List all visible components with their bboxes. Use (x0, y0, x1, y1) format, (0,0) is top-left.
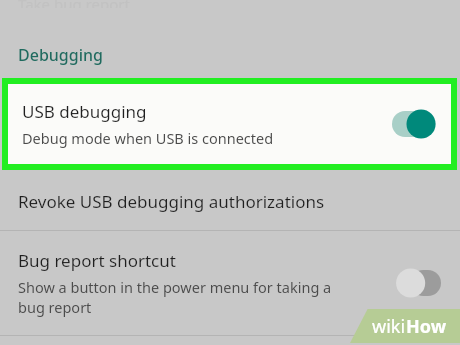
staticText: Debugging (18, 44, 103, 66)
staticText: wiki (372, 314, 406, 339)
button[interactable]: Bug report shortcut (0, 231, 460, 335)
staticText: Show a button in the power menu for taki… (18, 277, 332, 317)
button[interactable]: USB debugging (8, 84, 451, 164)
button[interactable]: Bug report shortcut toggle, off (396, 268, 442, 298)
staticText: Debug mode when USB is connected (22, 128, 274, 148)
staticText: Bug report shortcut (18, 249, 176, 272)
button[interactable]: USB debugging toggle, on (391, 109, 437, 139)
staticText: USB debugging (22, 100, 147, 123)
staticText: How (406, 314, 447, 339)
button[interactable]: Revoke USB debugging authorizations (0, 173, 460, 230)
staticText: Revoke USB debugging authorizations (18, 190, 325, 213)
